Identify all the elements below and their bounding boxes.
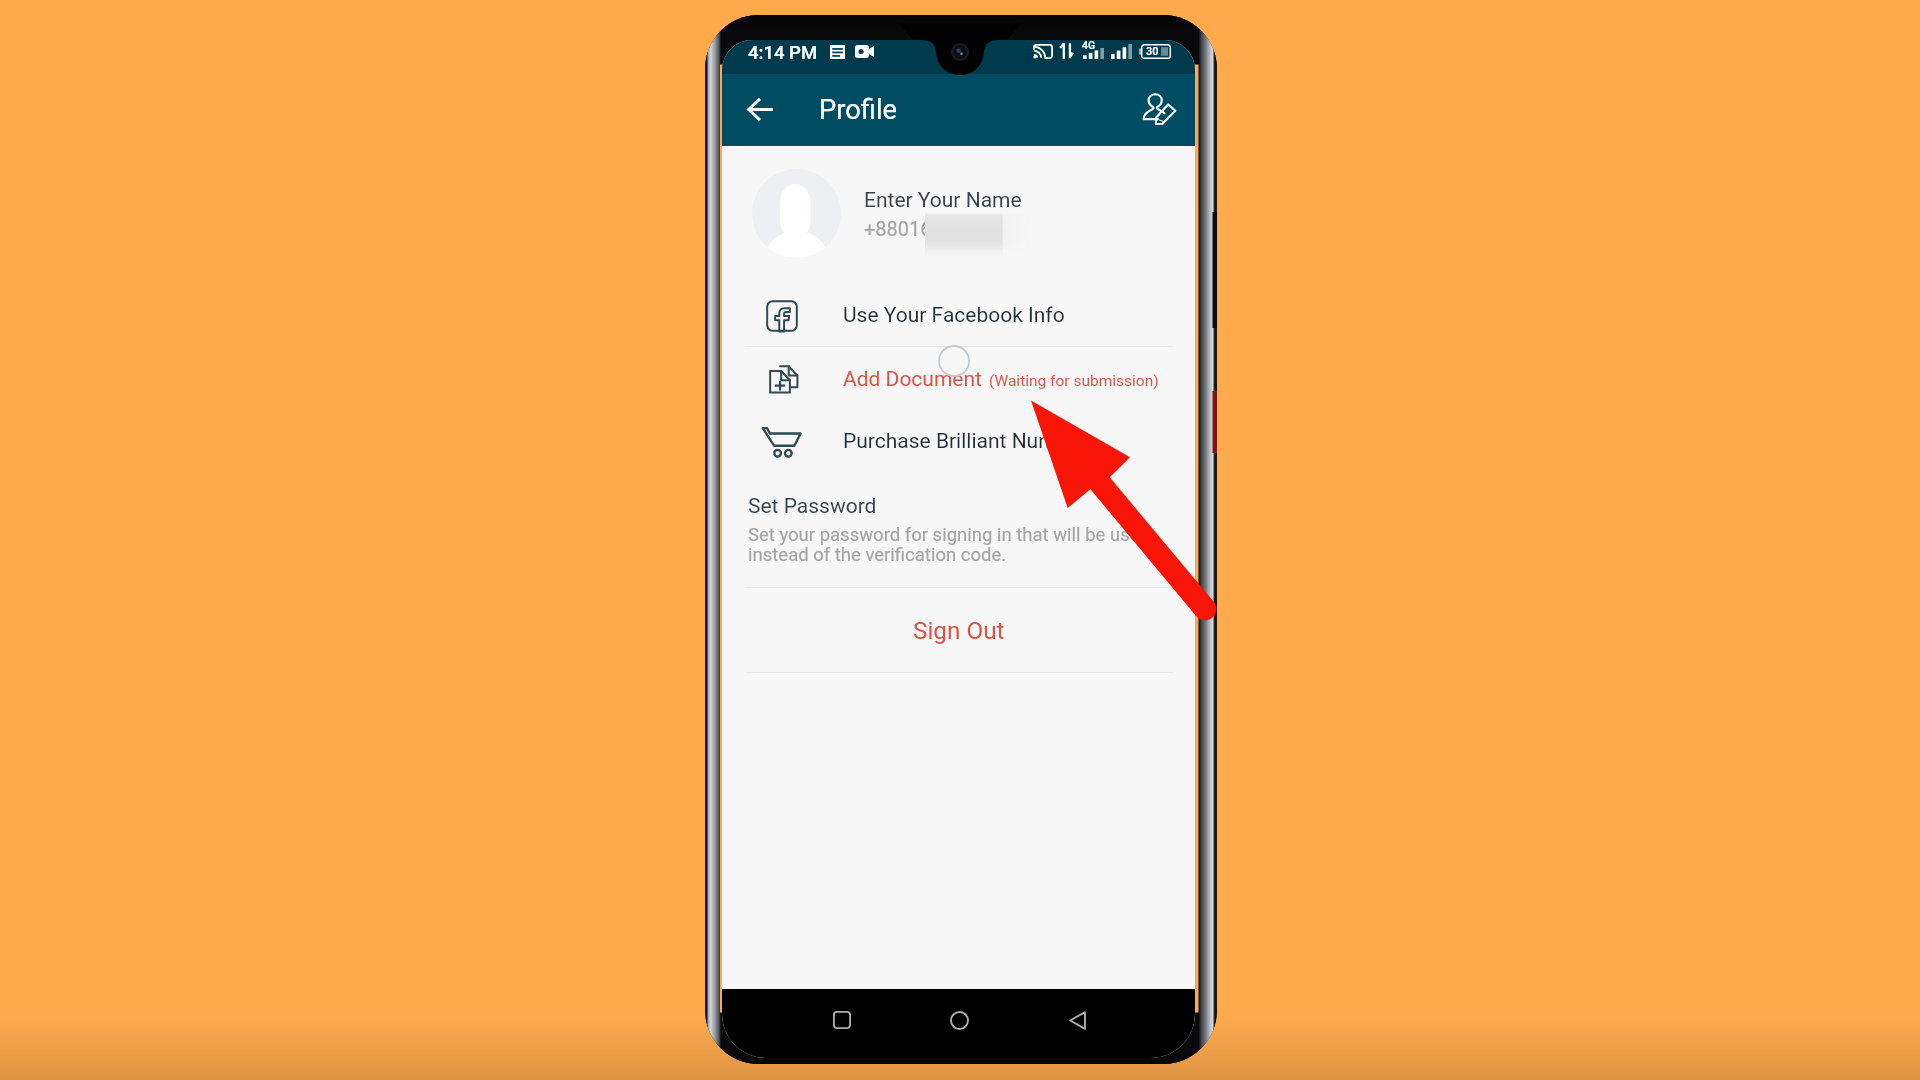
button[interactable]: Back [1054, 997, 1100, 1043]
button[interactable]: Home [936, 997, 982, 1043]
staticText: Set your password for signing in that wi… [748, 524, 1150, 565]
staticText: Profile [819, 94, 898, 126]
staticText: +88016 [864, 217, 932, 240]
staticText: 4:14 PM [748, 42, 818, 64]
button[interactable]: Edit profile [1132, 83, 1187, 138]
button[interactable] [722, 409, 1195, 471]
button[interactable]: Recents [819, 997, 865, 1043]
staticText: Purchase Brilliant Number [843, 429, 1087, 454]
staticText: (Waiting for submission) [989, 372, 1159, 390]
button[interactable] [722, 481, 1195, 585]
button[interactable]: Sign Out [722, 588, 1195, 672]
staticText: Use Your Facebook Info [843, 303, 1065, 328]
button[interactable] [722, 347, 1195, 409]
staticText: 30 [1146, 45, 1159, 58]
button[interactable]: Back [737, 86, 784, 133]
button[interactable] [722, 146, 1195, 284]
staticText: 4G [1082, 40, 1096, 51]
staticText: Set Password [748, 494, 877, 519]
staticText: Enter Your Name [864, 188, 1022, 213]
staticText: Add Document [843, 367, 982, 392]
staticText: Sign Out [913, 616, 1005, 644]
button[interactable] [722, 284, 1195, 346]
